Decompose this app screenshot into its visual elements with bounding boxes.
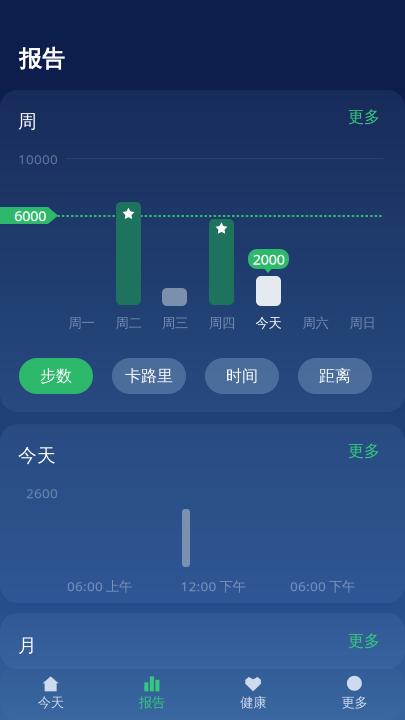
staticText: 周二	[115, 315, 141, 331]
staticText: 今天	[18, 444, 56, 467]
staticText: 06:00 上午	[67, 577, 132, 595]
staticText: 报告	[139, 694, 165, 711]
button[interactable]: 距离	[298, 358, 372, 394]
staticText: 时间	[226, 366, 258, 386]
staticText: 10000	[18, 150, 58, 168]
button[interactable]: 更多	[342, 438, 386, 464]
staticText: 更多	[341, 694, 367, 711]
staticText: 2600	[26, 484, 58, 502]
button[interactable]: 步数	[19, 358, 93, 394]
button[interactable]: 报告	[101, 666, 202, 720]
staticText: 健康	[240, 694, 266, 711]
button[interactable]: 今天	[0, 666, 101, 720]
staticText: 6000	[14, 206, 46, 225]
button[interactable]: 更多	[304, 666, 405, 720]
staticText: 周一	[68, 315, 94, 331]
staticText: 更多	[348, 631, 380, 651]
button[interactable]: 更多	[342, 104, 386, 130]
staticText: 2000	[252, 249, 284, 269]
staticText: 周	[18, 110, 37, 133]
button[interactable]: 健康	[202, 666, 304, 720]
staticText: 步数	[40, 366, 72, 386]
staticText: 更多	[348, 107, 380, 127]
staticText: 06:00 下午	[290, 577, 355, 595]
staticText: 周三	[162, 315, 188, 331]
staticText: 卡路里	[125, 366, 173, 386]
staticText: 12:00 下午	[180, 577, 245, 595]
staticText: 报告	[19, 45, 65, 73]
button[interactable]: 更多	[342, 628, 386, 654]
staticText: 周日	[349, 315, 375, 331]
staticText: 更多	[348, 441, 380, 461]
staticText: 今天	[255, 315, 281, 331]
staticText: 距离	[319, 366, 351, 386]
staticText: 今天	[38, 694, 64, 711]
staticText: 月	[18, 634, 37, 657]
button[interactable]: 卡路里	[112, 358, 186, 394]
button[interactable]: 时间	[205, 358, 279, 394]
staticText: 周六	[302, 315, 328, 331]
staticText: 周四	[209, 315, 235, 331]
